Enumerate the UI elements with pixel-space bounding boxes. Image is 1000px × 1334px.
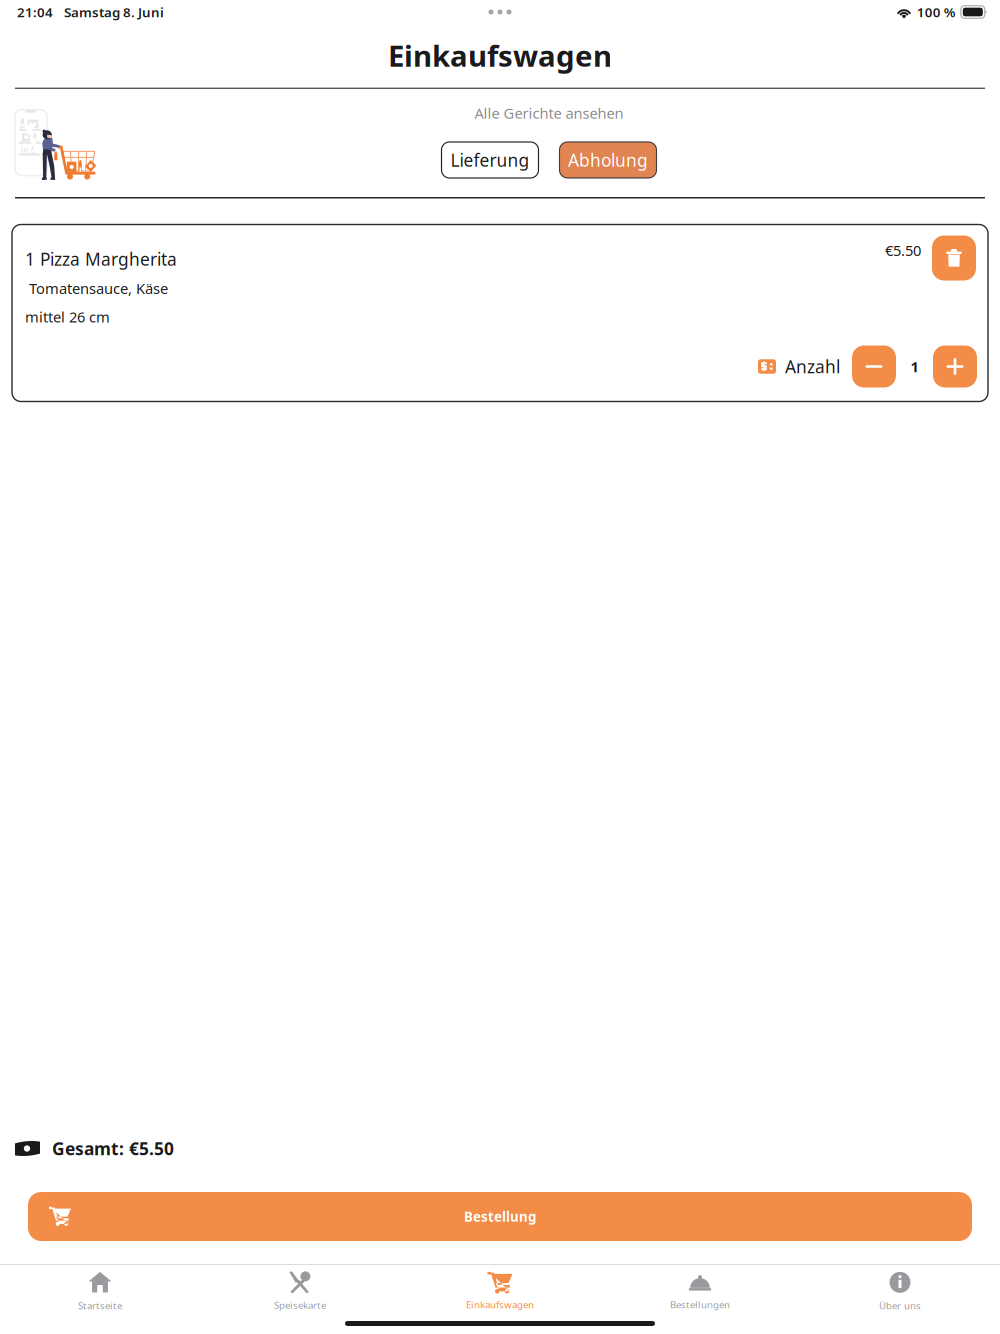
button[interactable]: Startseite [0,1266,200,1312]
button[interactable]: Abholung [559,142,656,178]
staticText: 100 % [917,3,956,21]
staticText: Bestellungen [670,1298,730,1311]
button[interactable]: Artikel löschen [932,235,976,280]
staticText: Anzahl [785,355,840,378]
staticText: Tomatensauce, Käse [25,278,168,298]
staticText: Über uns [879,1299,921,1312]
staticText: Startseite [78,1299,122,1312]
button[interactable]: Lieferung [441,142,538,178]
staticText: 1 Pizza Margherita [25,247,177,270]
staticText: Abholung [568,148,648,172]
staticText: 21:04 [17,3,53,21]
staticText: mittel 26 cm [25,307,110,326]
staticText: €5.50 [885,240,921,260]
button[interactable]: Bestellung [28,1192,972,1241]
button[interactable]: Speisekarte [200,1266,400,1312]
button[interactable]: Anzahl erhöhen [933,345,977,387]
staticText: Samstag 8. Juni [64,3,164,21]
staticText: Alle Gerichte ansehen [474,103,623,123]
button[interactable]: Über uns [800,1266,1000,1312]
staticText: Einkaufswagen [466,1298,534,1311]
staticText: Gesamt: €5.50 [52,1137,174,1160]
staticText: Bestellung [464,1208,536,1225]
button[interactable]: Anzahl verringern [852,345,896,387]
button[interactable]: Einkaufswagen [400,1267,600,1311]
staticText: 1 [910,357,918,376]
button[interactable]: Bestellungen [600,1267,800,1311]
staticText: Einkaufswagen [388,36,612,75]
staticText: Speisekarte [274,1298,326,1312]
staticText: Lieferung [450,148,529,172]
